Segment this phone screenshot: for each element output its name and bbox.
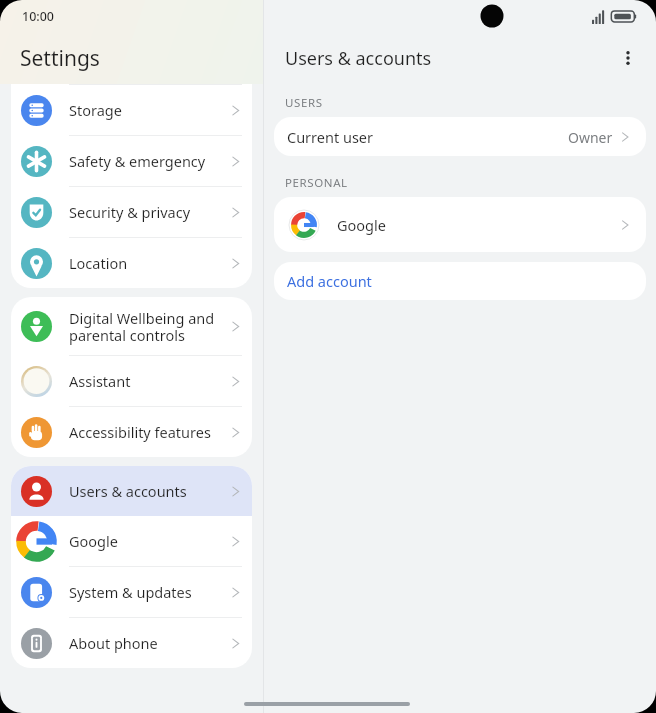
staticText: 10:00 [22, 8, 55, 25]
staticText: Accessibility features [69, 422, 227, 442]
staticText: Location [69, 253, 227, 273]
button[interactable]: Users & accounts [11, 466, 252, 516]
button[interactable]: Google [11, 516, 252, 566]
button[interactable]: Location [11, 238, 252, 288]
staticText: Users & accounts [285, 46, 432, 71]
staticText: Google [69, 531, 227, 551]
staticText: Safety & emergency [69, 151, 227, 171]
staticText: Storage [69, 100, 227, 120]
button[interactable]: Security & privacy [11, 187, 252, 237]
button[interactable]: System & updates [11, 567, 252, 617]
staticText: Add account [287, 271, 372, 291]
staticText: USERS [285, 95, 323, 111]
staticText: PERSONAL [285, 175, 348, 191]
button[interactable]: Storage [11, 85, 252, 135]
button[interactable]: Digital Wellbeing and parental controls [11, 297, 252, 355]
staticText: Security & privacy [69, 202, 227, 222]
button[interactable]: Google [274, 197, 646, 252]
button[interactable]: More options [608, 38, 648, 78]
staticText: Settings [20, 44, 100, 73]
button[interactable]: Add account [274, 262, 646, 300]
staticText: About phone [69, 633, 227, 653]
staticText: Owner [568, 128, 613, 147]
staticText: Digital Wellbeing and parental controls [69, 308, 227, 345]
button[interactable]: About phone [11, 618, 252, 668]
button[interactable]: Safety & emergency [11, 136, 252, 186]
button[interactable]: Accessibility features [11, 407, 252, 457]
button[interactable]: Current user [274, 117, 646, 156]
staticText: Current user [287, 127, 568, 147]
staticText: Assistant [69, 371, 227, 391]
staticText: System & updates [69, 582, 227, 602]
button[interactable]: Assistant [11, 356, 252, 406]
staticText: Users & accounts [69, 481, 227, 501]
staticText: Google [337, 215, 617, 235]
